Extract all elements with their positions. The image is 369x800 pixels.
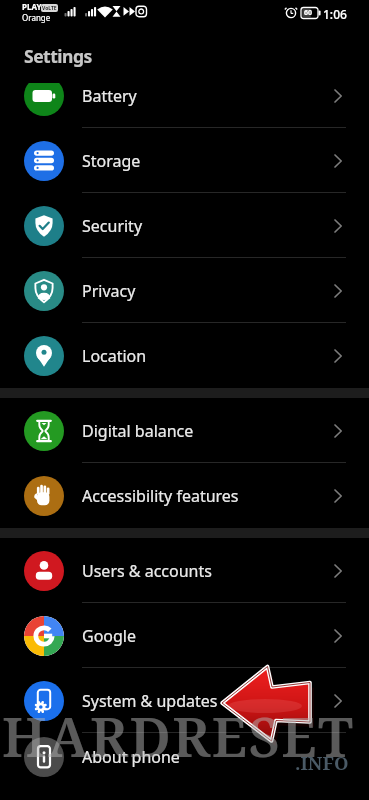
staticText: VoLTE <box>42 5 57 12</box>
staticText: 60 <box>304 8 313 18</box>
button[interactable]: Accessibility features <box>0 463 369 528</box>
button[interactable]: Storage <box>0 128 369 193</box>
staticText: About phone <box>82 746 180 768</box>
staticText: 1:06 <box>323 6 347 22</box>
staticText: Privacy <box>82 280 136 302</box>
staticText: Users & accounts <box>82 560 212 582</box>
staticText: Storage <box>82 150 141 172</box>
staticText: Digital balance <box>82 420 194 442</box>
staticText: Google <box>82 625 137 647</box>
staticText: HARDRESET <box>2 698 355 773</box>
staticText: Location <box>82 345 147 367</box>
staticText: Security <box>82 215 143 237</box>
staticText: Battery <box>82 85 137 107</box>
button[interactable]: About phone <box>0 733 369 780</box>
button[interactable]: Users & accounts <box>0 538 369 603</box>
staticText: System & updates <box>82 690 218 712</box>
button[interactable]: Digital balance <box>0 398 369 463</box>
button[interactable]: Location <box>0 323 369 388</box>
button[interactable]: Battery <box>0 83 369 128</box>
button[interactable]: Security <box>0 193 369 258</box>
button[interactable]: Privacy <box>0 258 369 323</box>
button[interactable]: System & updates <box>0 668 369 733</box>
staticText: PLAY <box>22 1 42 12</box>
staticText: Orange <box>22 12 51 23</box>
staticText: Settings <box>24 44 92 68</box>
staticText: .INFO <box>295 750 349 775</box>
staticText: Accessibility features <box>82 485 239 507</box>
button[interactable]: Google <box>0 603 369 668</box>
